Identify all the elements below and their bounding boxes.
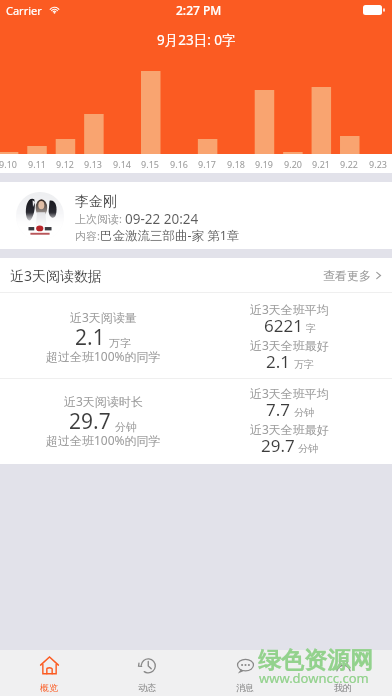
staticText: 9.22 bbox=[340, 158, 358, 170]
staticText: 09-22 20:24 bbox=[125, 210, 199, 227]
staticText: 29.7 bbox=[69, 407, 111, 436]
staticText: 7.7 bbox=[266, 398, 291, 421]
staticText: 内容: bbox=[75, 228, 100, 243]
staticText: 万字 bbox=[294, 358, 314, 371]
staticText: 李金刚 bbox=[75, 193, 117, 210]
button[interactable]: 消息 bbox=[196, 650, 294, 696]
staticText: Carrier bbox=[6, 3, 42, 18]
button[interactable]: 概览 bbox=[0, 650, 98, 696]
staticText: 近3天全班最好 bbox=[250, 337, 329, 353]
staticText: 2:27 PM bbox=[176, 2, 222, 18]
staticText: 近3天全班平均 bbox=[250, 385, 329, 401]
staticText: 9.20 bbox=[284, 158, 302, 170]
staticText: 万字 bbox=[109, 336, 131, 350]
staticText: 超过全班100%的同学 bbox=[46, 348, 161, 364]
staticText: 上次阅读: bbox=[75, 211, 125, 226]
button[interactable]: 我的 bbox=[294, 650, 392, 696]
staticText: 近3天阅读量 bbox=[70, 309, 137, 325]
staticText: 近3天全班最好 bbox=[250, 421, 329, 437]
staticText: 9.18 bbox=[227, 158, 245, 170]
staticText: 动态 bbox=[138, 682, 156, 693]
staticText: 消息 bbox=[236, 682, 254, 693]
staticText: 9月23日: 0字 bbox=[157, 31, 236, 49]
staticText: 查看更多 bbox=[323, 268, 371, 283]
staticText: 分钟 bbox=[294, 406, 314, 419]
staticText: 9.15 bbox=[141, 158, 159, 170]
staticText: 分钟 bbox=[298, 442, 318, 455]
staticText: 9.11 bbox=[28, 158, 46, 170]
staticText: 6221 bbox=[264, 314, 303, 337]
staticText: 9.23 bbox=[369, 158, 387, 170]
staticText: 2.1 bbox=[266, 350, 291, 373]
staticText: 绿色资源网 bbox=[258, 646, 373, 675]
staticText: 近3天阅读数据 bbox=[10, 266, 103, 285]
staticText: 分钟 bbox=[115, 420, 137, 434]
staticText: www.downcc.com bbox=[259, 669, 369, 687]
staticText: 巴金激流三部曲-家 第1章 bbox=[100, 227, 240, 244]
staticText: 9.17 bbox=[198, 158, 216, 170]
staticText: 9.19 bbox=[255, 158, 273, 170]
staticText: 超过全班100%的同学 bbox=[46, 432, 161, 448]
staticText: 9.12 bbox=[56, 158, 74, 170]
staticText: 9.21 bbox=[312, 158, 330, 170]
button[interactable]: 李金刚 bbox=[0, 182, 392, 249]
staticText: 9.14 bbox=[113, 158, 131, 170]
staticText: 概览 bbox=[40, 682, 58, 693]
staticText: 9.13 bbox=[84, 158, 102, 170]
staticText: 近3天全班平均 bbox=[250, 301, 329, 317]
button[interactable]: 动态 bbox=[98, 650, 196, 696]
button[interactable]: 查看更多 bbox=[323, 268, 381, 283]
staticText: 9.16 bbox=[170, 158, 188, 170]
staticText: 字 bbox=[306, 322, 316, 335]
staticText: 我的 bbox=[334, 682, 352, 693]
staticText: 29.7 bbox=[261, 434, 295, 457]
staticText: 9.10 bbox=[0, 158, 17, 170]
staticText: 2.1 bbox=[75, 323, 105, 352]
staticText: 近3天阅读时长 bbox=[64, 393, 143, 409]
